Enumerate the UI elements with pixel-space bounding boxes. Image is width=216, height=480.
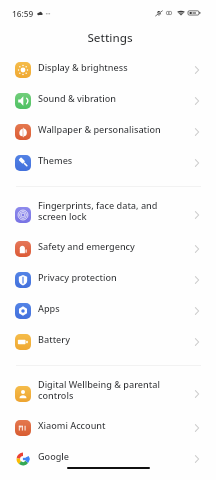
staticText: 16:59 bbox=[12, 8, 34, 19]
staticText: Settings bbox=[87, 30, 133, 46]
button[interactable]: Sound & vibration bbox=[0, 85, 216, 116]
button[interactable]: Display & brightness bbox=[0, 54, 216, 85]
staticText: Fingerprints, face data, and screen lock bbox=[38, 199, 158, 223]
button[interactable]: Digital Wellbeing & parental controls bbox=[0, 376, 216, 412]
button[interactable]: Fingerprints, face data, and screen lock bbox=[0, 197, 216, 233]
staticText: Digital Wellbeing & parental controls bbox=[38, 378, 160, 402]
staticText: Display & brightness bbox=[38, 61, 128, 73]
staticText: Safety and emergency bbox=[38, 240, 135, 252]
staticText: Wallpaper & personalisation bbox=[38, 123, 161, 135]
staticText: Themes bbox=[38, 154, 73, 166]
staticText: Apps bbox=[38, 302, 60, 314]
button[interactable]: Privacy protection bbox=[0, 264, 216, 295]
button[interactable]: Safety and emergency bbox=[0, 233, 216, 264]
button[interactable]: Google bbox=[0, 443, 216, 474]
staticText: Battery bbox=[38, 333, 70, 345]
button[interactable]: Themes bbox=[0, 147, 216, 178]
button[interactable]: Battery bbox=[0, 326, 216, 357]
staticText: Sound & vibration bbox=[38, 92, 116, 104]
staticText: Google bbox=[38, 450, 70, 462]
staticText: Xiaomi Account bbox=[38, 419, 106, 431]
staticText: Privacy protection bbox=[38, 271, 117, 283]
button[interactable]: Xiaomi Account bbox=[0, 412, 216, 443]
button[interactable]: Wallpaper & personalisation bbox=[0, 116, 216, 147]
button[interactable]: Apps bbox=[0, 295, 216, 326]
